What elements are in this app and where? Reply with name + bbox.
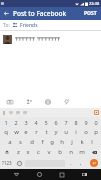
staticText: m — [79, 148, 85, 156]
button[interactable]: Backspace — [87, 147, 101, 157]
staticText: s — [19, 138, 22, 146]
button[interactable]: m — [76, 147, 87, 157]
staticText: ?123 — [2, 160, 12, 166]
button[interactable]: q — [0, 127, 11, 137]
button[interactable]: r — [31, 127, 41, 137]
button[interactable]: d — [26, 137, 37, 147]
button[interactable]: 4 — [31, 117, 41, 127]
staticText: POST — [84, 10, 97, 17]
button[interactable]: 8 — [71, 117, 81, 127]
button[interactable]: 1 — [0, 117, 11, 127]
button[interactable]: Recent apps — [56, 169, 67, 180]
button[interactable]: 2 — [11, 117, 21, 127]
button[interactable]: j — [67, 137, 77, 147]
button[interactable]: 9 — [81, 117, 91, 127]
staticText: a — [8, 138, 12, 146]
staticText: 7 — [64, 119, 68, 126]
button[interactable]: h — [57, 137, 67, 147]
button[interactable]: g — [47, 137, 57, 147]
button[interactable]: ?123 — [0, 157, 14, 169]
button[interactable]: v — [43, 147, 54, 157]
staticText: g — [50, 138, 54, 146]
button[interactable]: Home — [34, 169, 45, 180]
staticText: 9 — [84, 119, 88, 126]
button[interactable]: 6 — [51, 117, 61, 127]
staticText: i — [75, 128, 77, 136]
button[interactable] — [2, 111, 6, 115]
staticText: h — [60, 138, 64, 146]
button[interactable]: z — [13, 147, 23, 157]
staticText: w — [14, 128, 19, 136]
button[interactable]: t — [41, 127, 51, 137]
staticText: , — [80, 159, 82, 167]
button[interactable]: Check in — [62, 97, 71, 106]
staticText: 3 — [24, 119, 28, 126]
button[interactable]: Emoji — [14, 157, 24, 169]
staticText: . — [70, 159, 72, 167]
button[interactable]: Keyboard settings — [93, 109, 100, 116]
button[interactable]: POST — [80, 7, 101, 20]
button[interactable]: Tag friends — [24, 97, 33, 106]
button[interactable]: n — [65, 147, 76, 157]
staticText: 5 — [44, 119, 48, 126]
staticText: 0 — [94, 119, 98, 126]
button[interactable]: Shift — [0, 147, 13, 157]
staticText: 4 — [34, 119, 38, 126]
button[interactable]: i — [71, 127, 81, 137]
staticText: k — [80, 138, 84, 146]
button[interactable]: , — [76, 157, 86, 169]
staticText: b — [58, 148, 62, 156]
button[interactable]: s — [15, 137, 26, 147]
button[interactable]: c — [33, 147, 43, 157]
staticText: n — [69, 148, 73, 156]
staticText: z — [17, 148, 20, 156]
button[interactable]: 7 — [61, 117, 71, 127]
staticText: v — [47, 148, 51, 156]
staticText: o — [84, 128, 88, 136]
staticText: p — [94, 128, 98, 136]
staticText: 6 — [54, 119, 58, 126]
button[interactable]: l — [87, 137, 97, 147]
button[interactable]: . — [66, 157, 76, 169]
staticText: x — [26, 148, 30, 156]
staticText: Friends — [20, 22, 38, 29]
staticText: q — [4, 128, 8, 136]
button[interactable]: w — [11, 127, 21, 137]
staticText: Post to Facebook — [13, 9, 67, 18]
button[interactable]: x — [23, 147, 33, 157]
button[interactable]: e — [21, 127, 31, 137]
staticText: u — [64, 128, 68, 136]
button[interactable]: o — [81, 127, 91, 137]
staticText: c — [37, 148, 40, 156]
staticText: j — [71, 138, 73, 146]
button[interactable]: b — [54, 147, 65, 157]
button[interactable]: Back — [0, 7, 13, 20]
staticText: f — [41, 138, 44, 146]
staticText: To: — [3, 22, 10, 29]
staticText: l — [91, 138, 93, 146]
staticText: e — [24, 128, 28, 136]
button[interactable]: Screenshot — [79, 169, 90, 180]
button[interactable]: 3 — [21, 117, 31, 127]
button[interactable]: 5 — [41, 117, 51, 127]
staticText: d — [30, 138, 34, 146]
button[interactable]: Add photo — [5, 97, 14, 106]
staticText: 8 — [74, 119, 78, 126]
button[interactable]: Privacy — [43, 97, 52, 106]
button[interactable]: u — [61, 127, 71, 137]
button[interactable]: f — [37, 137, 47, 147]
staticText: 23:38 — [89, 1, 100, 6]
button[interactable]: Back — [11, 169, 22, 180]
button[interactable]: To: — [0, 20, 101, 30]
button[interactable]: Enter — [86, 157, 101, 169]
button[interactable]: a — [4, 137, 15, 147]
staticText: 2 — [14, 119, 18, 126]
staticText: 1 — [4, 119, 8, 126]
button[interactable]: p — [91, 127, 101, 137]
staticText: t — [45, 128, 48, 136]
button[interactable]: 0 — [91, 117, 101, 127]
button[interactable]: y — [51, 127, 61, 137]
button[interactable]: k — [77, 137, 87, 147]
staticText: y — [54, 128, 58, 136]
